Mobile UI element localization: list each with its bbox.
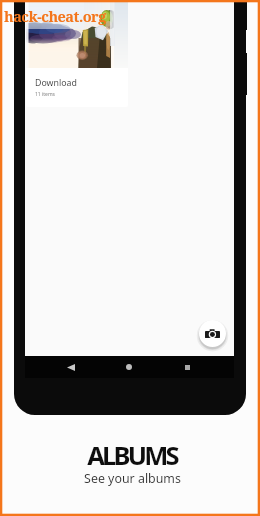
button[interactable]: Recent apps [162,356,212,378]
staticText: hack-cheat.org [4,6,106,26]
staticText: Download [35,77,77,89]
button[interactable]: Download [26,0,128,107]
button[interactable]: Home [104,356,154,378]
button[interactable]: Back [46,356,96,378]
staticText: ALBUMS [87,438,177,473]
staticText: See your albums [84,470,181,487]
staticText: 11 items [35,91,56,98]
button[interactable]: Camera [199,320,226,347]
